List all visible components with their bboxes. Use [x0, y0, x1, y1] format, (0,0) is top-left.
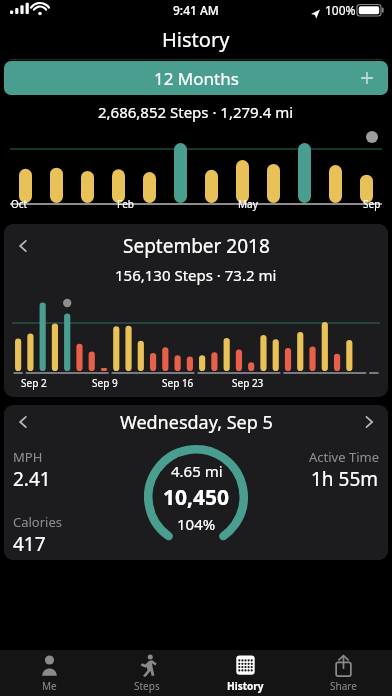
staticText: September 2018 — [123, 233, 270, 259]
staticText: Me — [42, 679, 57, 693]
staticText: 9:41 AM — [173, 2, 219, 18]
staticText: Sep 23 — [232, 376, 264, 390]
staticText: Sep 16 — [162, 376, 194, 390]
button[interactable]: Previous month — [8, 232, 38, 260]
staticText: 2,686,852 Steps · 1,279.4 mi — [98, 102, 294, 122]
staticText: 156,130 Steps · 73.2 mi — [115, 265, 277, 285]
staticText: Oct — [11, 197, 28, 211]
staticText: 104% — [177, 514, 216, 534]
button[interactable]: Steps — [98, 650, 196, 696]
button[interactable]: Share — [294, 650, 392, 696]
staticText: 100% — [325, 2, 356, 18]
button[interactable]: Me — [0, 650, 98, 696]
staticText: MPH — [13, 448, 43, 466]
staticText: Share — [330, 679, 357, 693]
button[interactable]: 12 Months — [4, 61, 388, 95]
staticText: 1h 55m — [311, 466, 379, 492]
button[interactable]: Wednesday, Sep 5 — [4, 405, 388, 560]
staticText: Steps — [134, 679, 160, 693]
staticText: History — [227, 679, 264, 693]
button[interactable]: History — [196, 650, 294, 696]
staticText: Sep 2 — [21, 376, 47, 390]
staticText: Sep 9 — [92, 376, 118, 390]
staticText: 4.65 mi — [171, 461, 223, 481]
button[interactable]: Previous day — [8, 407, 38, 437]
button[interactable]: Add — [354, 65, 380, 91]
staticText: History — [162, 26, 230, 53]
staticText: May — [238, 197, 258, 211]
staticText: Wednesday, Sep 5 — [120, 410, 273, 435]
staticText: 12 Months — [154, 67, 239, 90]
staticText: 2.41 — [13, 466, 51, 492]
button[interactable]: Next day — [354, 407, 384, 437]
staticText: Feb — [117, 197, 134, 211]
staticText: Sep — [363, 197, 381, 211]
staticText: Calories — [13, 513, 63, 531]
staticText: Active Time — [309, 448, 379, 466]
staticText: 417 — [13, 531, 46, 557]
button[interactable]: September 2018 — [4, 224, 388, 397]
staticText: 10,450 — [163, 483, 230, 512]
